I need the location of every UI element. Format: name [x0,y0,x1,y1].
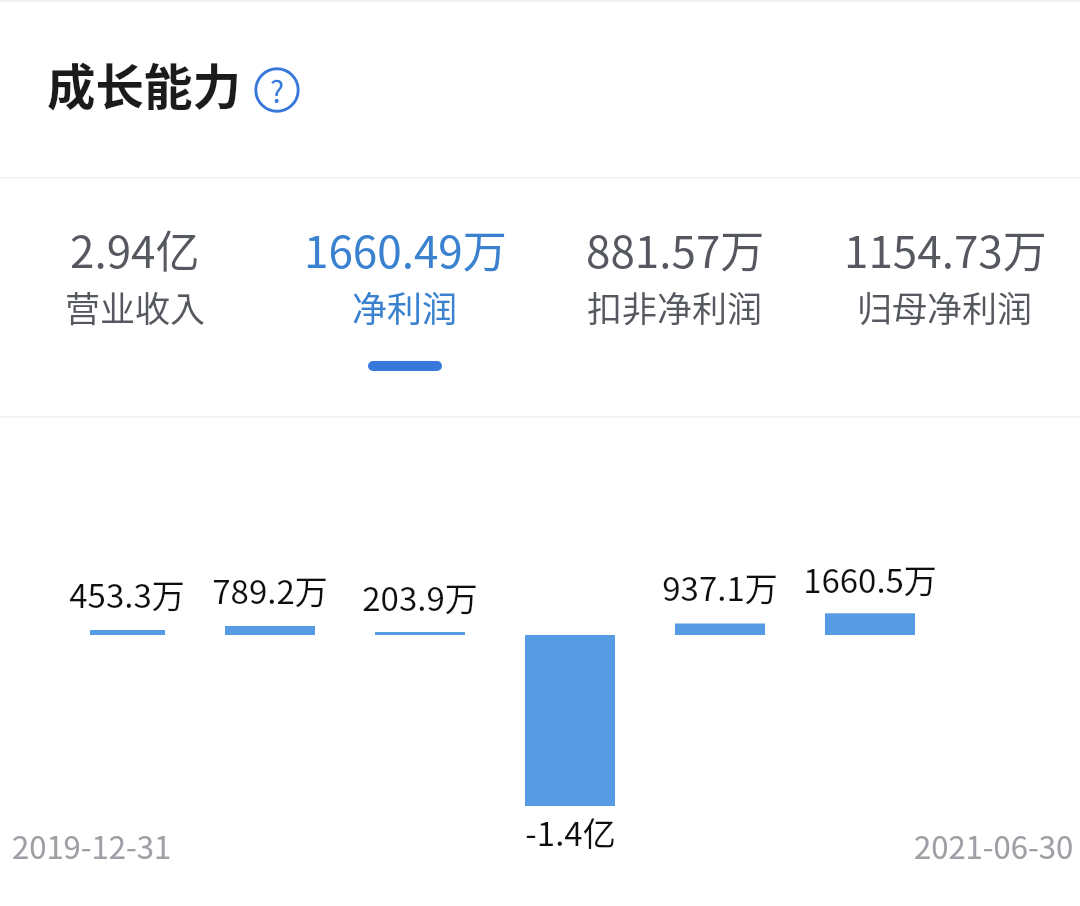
staticText: 203.9万 [362,573,478,621]
staticText: 归母净利润 [857,281,1033,332]
button[interactable]: 2.94亿 [0,178,270,361]
button[interactable]: 1660.49万 [270,178,540,371]
staticText: 扣非净利润 [587,281,763,332]
staticText: 1660.49万 [304,217,507,281]
staticText: ? [270,68,285,111]
staticText: 成长能力 [47,49,242,119]
staticText: 2019-12-31 [12,823,172,868]
staticText: 净利润 [352,281,458,332]
staticText: 937.1万 [662,563,778,611]
button[interactable]: 1154.73万 [810,178,1080,361]
button[interactable]: Help [250,63,304,117]
staticText: 2.94亿 [70,217,200,281]
staticText: -1.4亿 [525,808,616,856]
staticText: 营业收入 [65,281,206,332]
staticText: 881.57万 [586,217,765,281]
staticText: 1154.73万 [844,217,1047,281]
staticText: 1660.5万 [803,555,937,603]
staticText: 453.3万 [69,570,185,618]
staticText: 789.2万 [212,566,328,614]
staticText: 2021-06-30 [914,823,1074,868]
button[interactable]: 881.57万 [540,178,810,361]
